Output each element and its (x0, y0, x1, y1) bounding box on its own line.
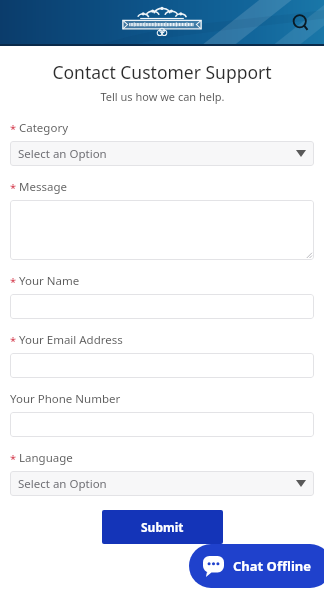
staticText: Chat Offline (233, 557, 312, 575)
staticText: Select an Option (18, 146, 296, 162)
staticText: * (10, 451, 17, 466)
staticText: Message (19, 179, 67, 195)
button[interactable] (10, 353, 314, 378)
button[interactable]: Select an Option (10, 141, 314, 166)
button[interactable]: Mercury International home (119, 5, 205, 39)
staticText: * (10, 333, 17, 348)
button[interactable] (10, 412, 314, 437)
staticText: Category (19, 120, 69, 136)
staticText: * (10, 180, 17, 195)
staticText: Language (19, 450, 73, 466)
staticText: Your Phone Number (10, 391, 121, 407)
button[interactable] (10, 200, 314, 260)
staticText: Tell us how we can help. (100, 89, 225, 104)
button[interactable]: Select an Option (10, 471, 314, 496)
staticText: * (10, 121, 17, 136)
staticText: Select an Option (18, 476, 296, 492)
staticText: Contact Customer Support (52, 60, 272, 84)
staticText: Submit (141, 519, 184, 535)
staticText: Your Name (19, 273, 80, 289)
staticText: * (10, 274, 17, 289)
staticText: Your Email Address (19, 332, 123, 348)
button[interactable]: Chat Offline (189, 544, 324, 588)
button[interactable]: Search (286, 8, 316, 38)
button[interactable] (10, 294, 314, 319)
button[interactable]: Submit (102, 510, 223, 544)
